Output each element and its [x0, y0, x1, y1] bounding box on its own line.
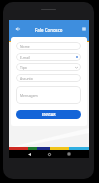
button[interactable]: Tipo: [16, 63, 81, 71]
button[interactable]: Mensagem: [16, 86, 81, 104]
staticText: Mensagem: [20, 93, 38, 98]
button[interactable]: Home: [43, 150, 55, 158]
staticText: Nome: [20, 44, 30, 49]
button[interactable]: Back: [23, 150, 35, 158]
button[interactable]: Recent apps: [63, 150, 75, 158]
button[interactable]: Menu: [79, 24, 88, 33]
button[interactable]: E-mail: [16, 53, 81, 61]
button[interactable]: Assunto: [16, 74, 81, 82]
button[interactable]: Nome: [16, 42, 81, 50]
staticText: Fale Conosco: [35, 27, 63, 33]
staticText: ENVIAR: [42, 112, 56, 117]
staticText: Tipo: [20, 65, 27, 70]
button[interactable]: Back: [13, 24, 22, 33]
staticText: Assunto: [20, 76, 33, 81]
staticText: E-mail: [20, 55, 30, 60]
button[interactable]: ENVIAR: [16, 110, 81, 119]
